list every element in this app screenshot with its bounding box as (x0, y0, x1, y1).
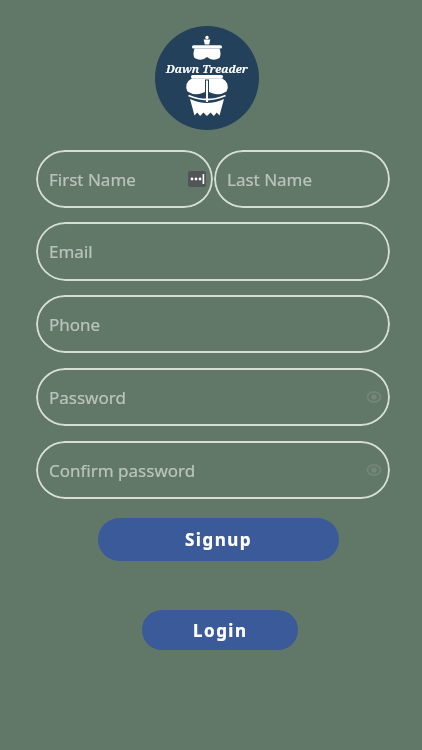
button[interactable]: Signup (98, 518, 339, 561)
staticText: Signup (185, 528, 253, 551)
staticText: Password (49, 386, 126, 409)
button[interactable]: Phone (36, 295, 390, 353)
button[interactable]: First Name (36, 150, 213, 208)
staticText: Email (49, 240, 93, 263)
button[interactable]: Last Name (214, 150, 390, 208)
staticText: First Name (49, 168, 136, 191)
staticText: Phone (49, 313, 101, 336)
staticText: Last Name (227, 168, 313, 191)
staticText: Confirm password (49, 459, 196, 482)
button[interactable]: Password (36, 368, 390, 426)
button[interactable]: Login (142, 610, 298, 650)
staticText: Login (193, 619, 248, 642)
button[interactable]: Email (36, 222, 390, 281)
staticText: Dawn Treader (166, 61, 248, 77)
button[interactable]: Confirm password (36, 441, 390, 499)
